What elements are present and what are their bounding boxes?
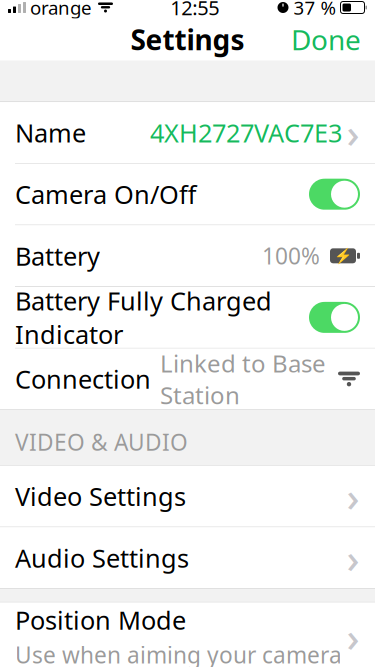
button[interactable]: Audio Settings: [0, 527, 375, 588]
staticText: ›: [346, 610, 359, 663]
button[interactable]: Camera On/Off: [309, 179, 360, 210]
staticText: Connection: [15, 362, 151, 396]
staticText: Video Settings: [15, 479, 186, 513]
staticText: Position Mode: [15, 603, 186, 637]
staticText: orange: [30, 0, 92, 20]
staticText: ›: [346, 106, 359, 159]
staticText: Settings: [130, 21, 244, 58]
staticText: Battery: [15, 239, 100, 273]
button[interactable]: Done: [277, 13, 375, 66]
staticText: ›: [346, 470, 359, 523]
staticText: Done: [291, 21, 361, 58]
button[interactable]: Name: [0, 102, 375, 163]
staticText: 12:55: [170, 0, 219, 21]
staticText: ⚡: [334, 247, 352, 264]
staticText: 100%: [262, 241, 320, 271]
staticText: Name: [15, 116, 86, 149]
staticText: VIDEO & AUDIO: [15, 427, 188, 457]
staticText: Linked to Base Station: [160, 347, 326, 411]
staticText: 37 %: [293, 0, 336, 20]
button[interactable]: Battery Fully Charged Indicator: [309, 302, 360, 333]
staticText: 4XH2727VAC7E3: [150, 116, 342, 149]
staticText: Battery Fully Charged Indicator: [15, 284, 272, 351]
staticText: Use when aiming your camera: [15, 640, 342, 667]
staticText: ›: [346, 531, 359, 584]
staticText: Camera On/Off: [15, 177, 196, 211]
button[interactable]: Position Mode: [0, 602, 375, 667]
staticText: Audio Settings: [15, 541, 189, 575]
button[interactable]: Video Settings: [0, 466, 375, 527]
